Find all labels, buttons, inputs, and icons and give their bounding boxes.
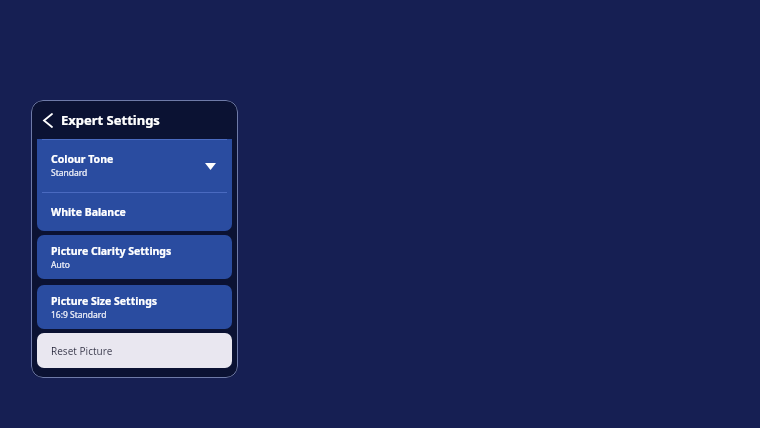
staticText: Picture Size Settings (51, 294, 158, 308)
staticText: White Balance (51, 205, 126, 219)
button[interactable]: Picture Clarity Settings (37, 235, 232, 279)
button[interactable]: Picture Size Settings (37, 285, 232, 329)
button[interactable]: White Balance (37, 192, 232, 231)
staticText: Picture Clarity Settings (51, 244, 172, 258)
button[interactable]: Colour Tone (37, 139, 232, 192)
staticText: Reset Picture (51, 344, 113, 358)
button[interactable]: Reset Picture (37, 333, 232, 368)
staticText: Expert Settings (61, 111, 160, 129)
staticText: Standard (51, 167, 88, 179)
staticText: Colour Tone (51, 152, 114, 166)
staticText: 16:9 Standard (51, 309, 107, 321)
button[interactable]: Back (38, 110, 58, 130)
button[interactable]: Expand Colour Tone (202, 158, 218, 174)
staticText: Auto (51, 259, 70, 271)
